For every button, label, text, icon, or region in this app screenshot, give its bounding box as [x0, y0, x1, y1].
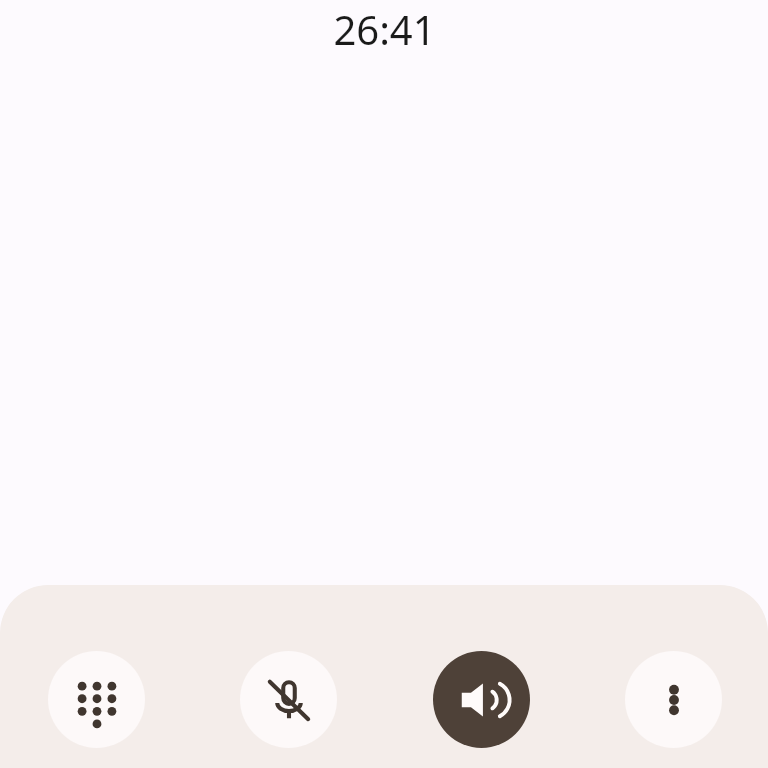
button[interactable]: Dialpad: [48, 651, 145, 748]
button[interactable]: Mute: [240, 651, 337, 748]
button[interactable]: More options: [625, 651, 722, 748]
button[interactable]: Speaker: [433, 651, 530, 748]
staticText: 26:41: [333, 2, 436, 56]
